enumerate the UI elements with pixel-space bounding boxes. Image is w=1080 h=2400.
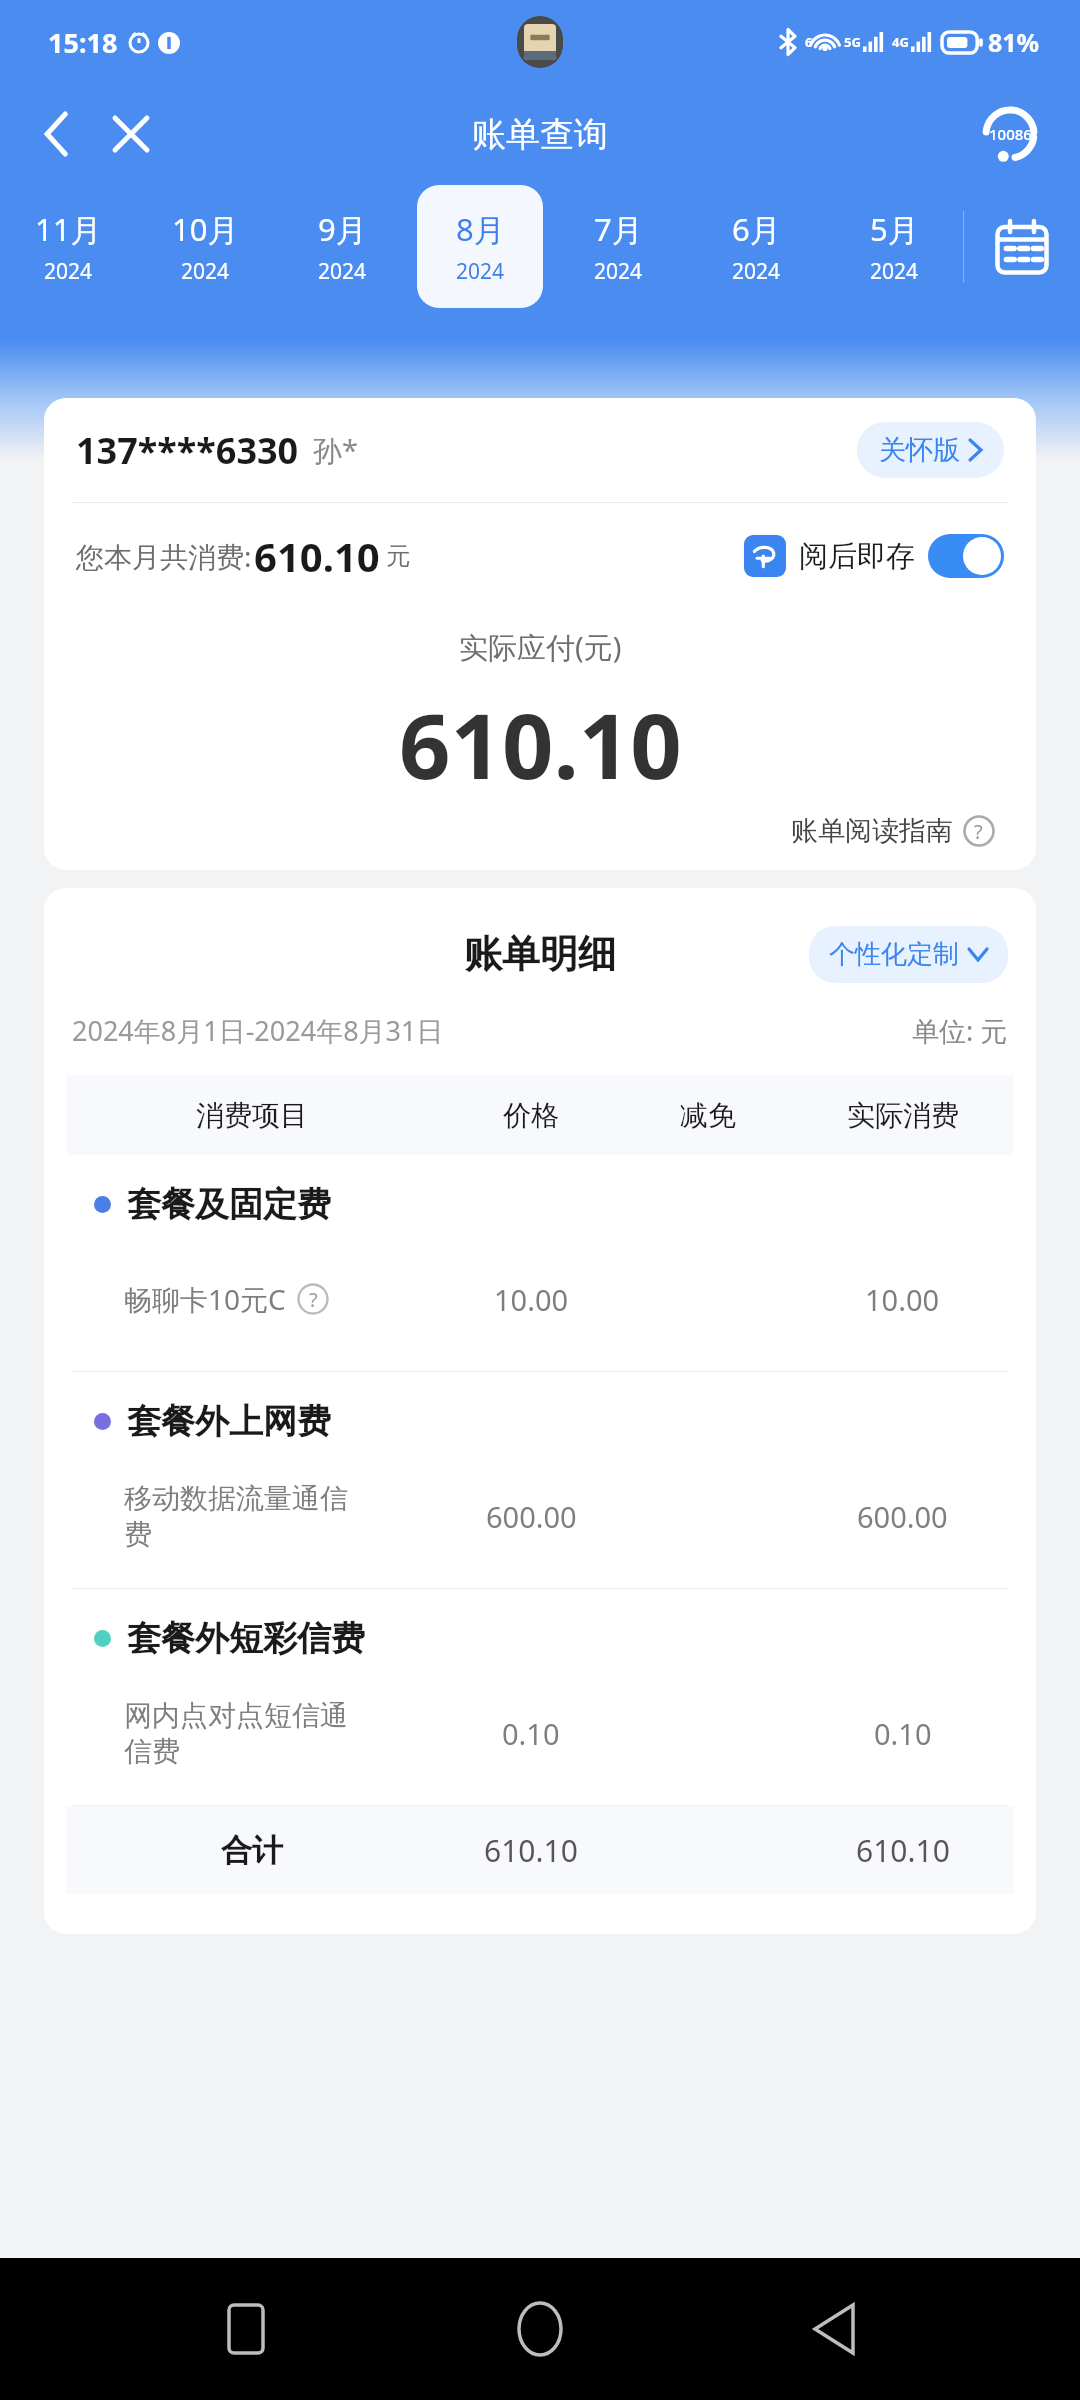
staticText: 11月	[35, 208, 102, 250]
staticText: 套餐及固定费	[127, 1183, 331, 1226]
button[interactable]: 客服 10086	[972, 96, 1048, 172]
staticText: 600.00	[857, 1497, 948, 1536]
staticText: 7月	[594, 208, 643, 250]
staticText: 8月	[456, 208, 505, 250]
staticText: 套餐外短彩信费	[127, 1617, 365, 1660]
staticText: 610.10	[856, 1830, 950, 1871]
button[interactable]: 9月	[280, 185, 405, 308]
staticText: 0.10	[874, 1714, 932, 1753]
button[interactable]: 5月	[831, 185, 957, 308]
staticText: 个性化定制	[829, 938, 959, 971]
staticText: 账单阅读指南	[791, 814, 953, 848]
staticText: 6月	[732, 208, 781, 250]
button[interactable]: 关怀版	[857, 422, 1004, 478]
staticText: 15:18	[48, 24, 118, 61]
staticText: 4G	[892, 33, 909, 51]
button[interactable]: 移动数据流量通信 费	[66, 1470, 1014, 1562]
button[interactable]: 账单阅读指南	[44, 814, 1004, 848]
staticText: 2024年8月1日-2024年8月31日	[72, 1012, 444, 1049]
staticText: 10.00	[494, 1280, 569, 1319]
staticText: 合计	[221, 1831, 283, 1870]
staticText: 关怀版	[879, 433, 960, 467]
staticText: 您本月共消费:	[76, 537, 252, 575]
staticText: 2024	[181, 257, 230, 286]
staticText: 消费项目	[196, 1098, 308, 1133]
button[interactable]: 网内点对点短信通 信费	[66, 1687, 1014, 1779]
staticText: 账单查询	[472, 113, 608, 156]
staticText: 5G	[844, 33, 861, 51]
staticText: 5月	[870, 208, 919, 250]
staticText: 2024	[732, 257, 781, 286]
staticText: 10月	[172, 208, 239, 250]
staticText: 9月	[318, 208, 367, 250]
staticText: 610.10	[399, 683, 682, 806]
button[interactable]: Close	[100, 103, 162, 165]
button[interactable]: Back	[786, 2281, 882, 2377]
button[interactable]: 11月	[6, 185, 131, 308]
staticText: 2024	[594, 257, 643, 286]
button[interactable]: 6月	[693, 185, 819, 308]
button[interactable]: 畅聊卡10元C	[66, 1253, 1014, 1345]
staticText: ?	[974, 818, 983, 845]
staticText: 6	[805, 33, 813, 51]
staticText: 元	[386, 541, 410, 571]
button[interactable]: 10月	[143, 185, 268, 308]
button[interactable]: 个性化定制	[809, 926, 1008, 983]
staticText: 网内点对点短信通 信费	[124, 1698, 348, 1769]
staticText: 2024	[456, 257, 505, 286]
staticText: 10086	[989, 124, 1032, 144]
button[interactable]: 8月	[417, 185, 543, 308]
staticText: 2024	[870, 257, 919, 286]
staticText: 0.10	[502, 1714, 560, 1753]
staticText: 2024	[44, 257, 93, 286]
staticText: 孙*	[313, 430, 358, 470]
button[interactable]: Back	[26, 103, 88, 165]
staticText: 610.10	[254, 529, 380, 583]
staticText: ?	[309, 1286, 318, 1313]
staticText: 610.10	[484, 1830, 578, 1871]
staticText: 减免	[680, 1098, 736, 1133]
staticText: 10.00	[865, 1280, 940, 1319]
button[interactable]: Home	[492, 2281, 588, 2377]
staticText: 2024	[318, 257, 367, 286]
staticText: 移动数据流量通信 费	[124, 1481, 348, 1552]
staticText: 600.00	[486, 1497, 577, 1536]
staticText: 实际应付(元)	[459, 627, 622, 667]
staticText: 价格	[503, 1098, 559, 1133]
staticText: 账单明细	[464, 930, 616, 978]
button[interactable]: 7月	[555, 185, 681, 308]
button[interactable]: 阅后即存	[744, 534, 1004, 578]
staticText: 套餐外上网费	[127, 1400, 331, 1443]
staticText: 137****6330	[76, 426, 299, 475]
staticText: 实际消费	[847, 1098, 959, 1133]
staticText: 单位: 元	[912, 1012, 1008, 1049]
button[interactable]: Recents	[198, 2281, 294, 2377]
button[interactable]: 选择日期	[964, 184, 1080, 309]
staticText: 阅后即存	[799, 538, 915, 575]
staticText: 畅聊卡10元C	[124, 1280, 286, 1318]
staticText: 81%	[988, 25, 1040, 59]
